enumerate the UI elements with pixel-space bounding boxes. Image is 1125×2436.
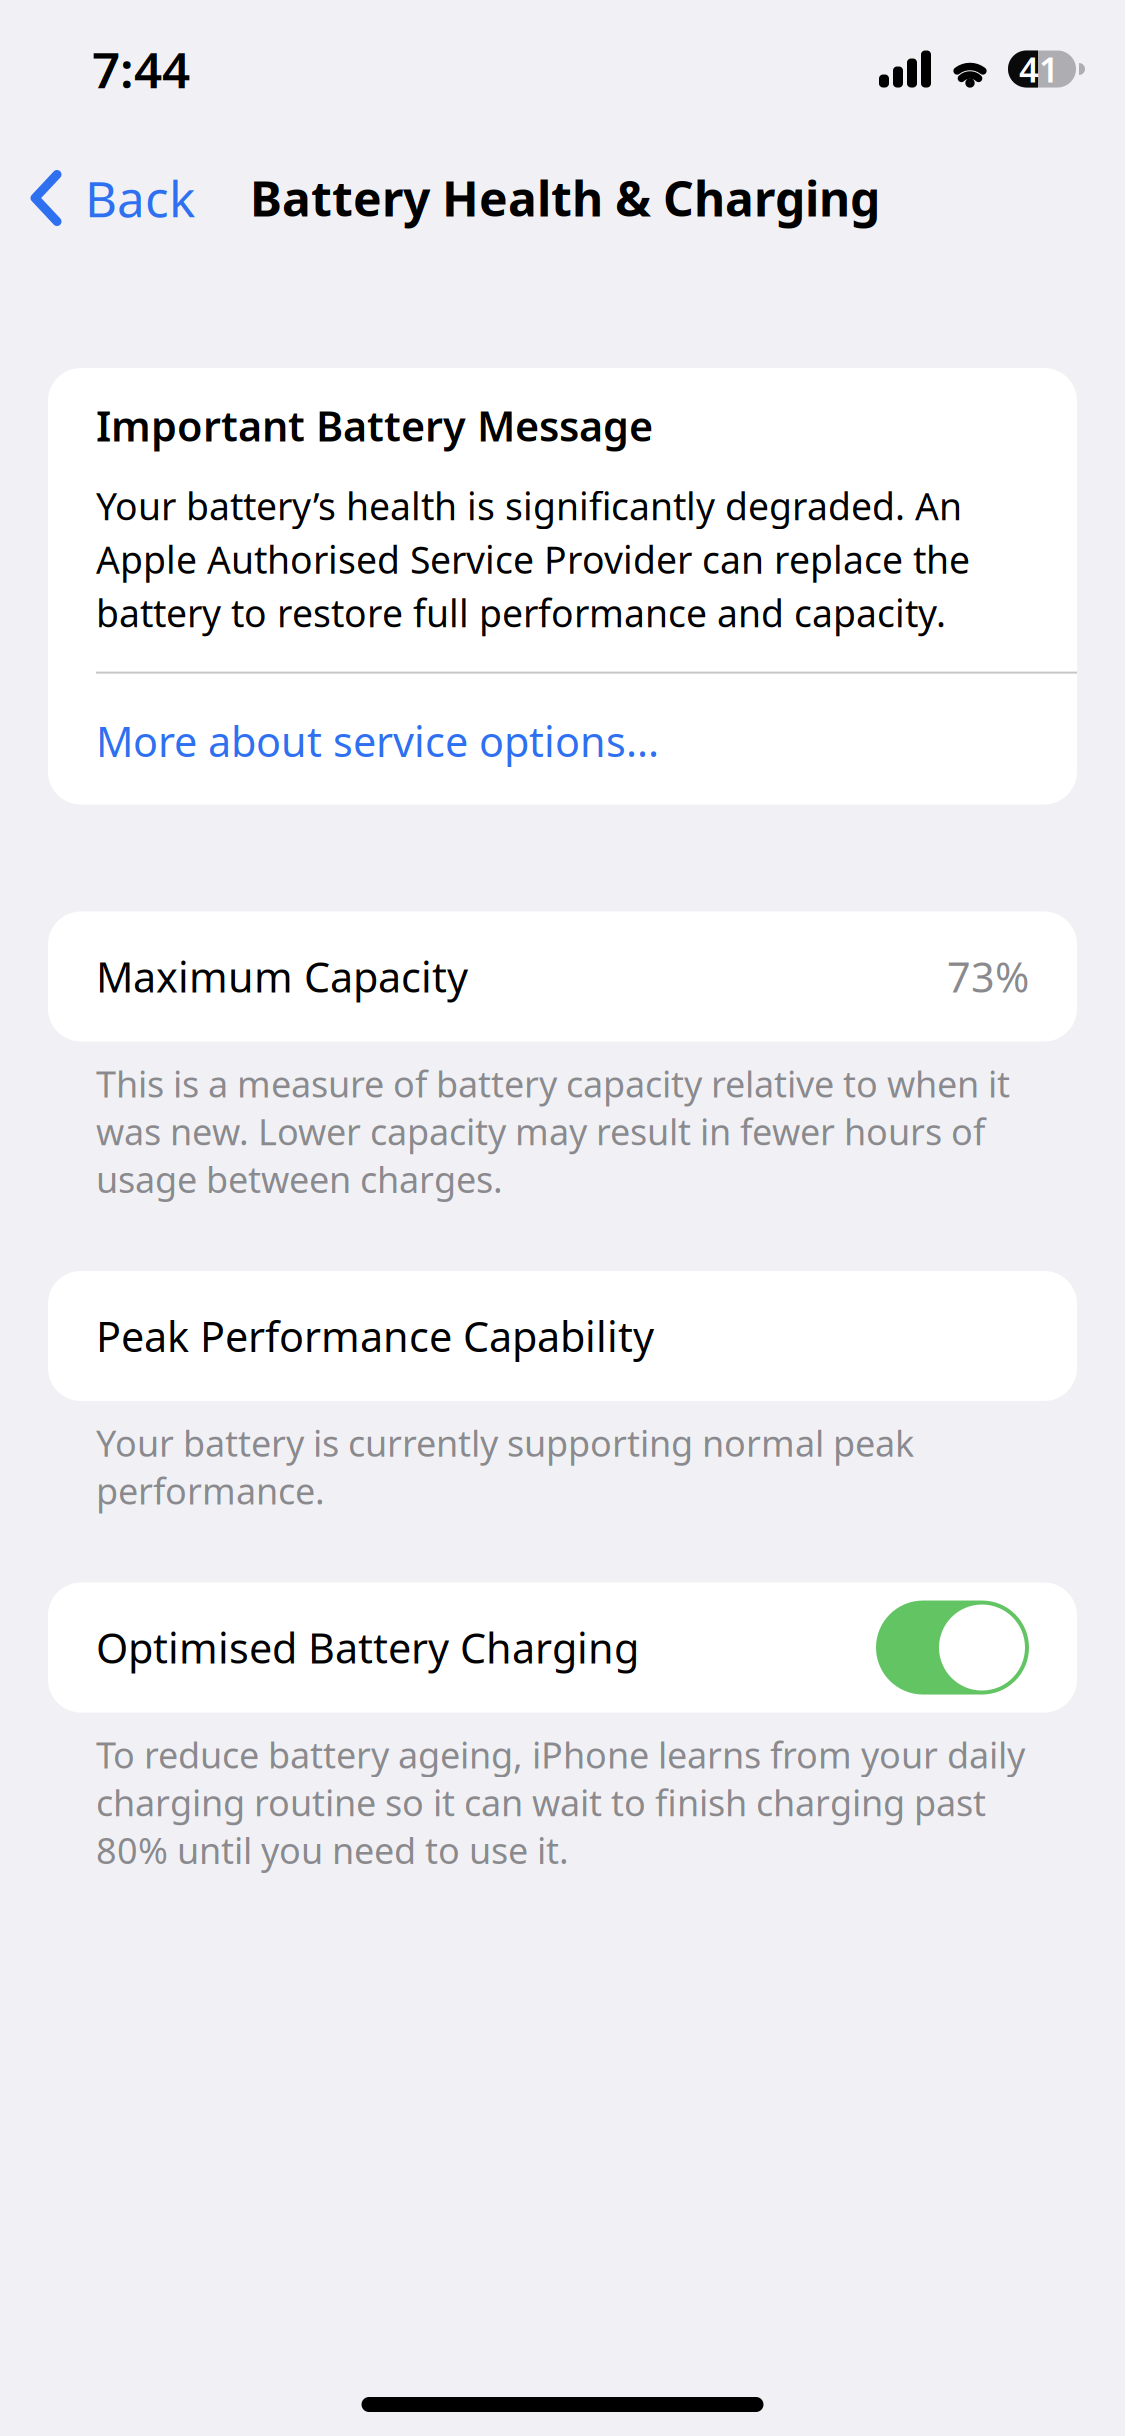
staticText: This is a measure of battery capacity re…: [96, 1059, 1010, 1203]
staticText: Battery Health & Charging: [250, 166, 880, 230]
staticText: Peak Performance Capability: [96, 1308, 654, 1363]
staticText: More about service options...: [96, 714, 659, 768]
button[interactable]: Peak Performance Capability: [0, 1271, 1125, 1401]
staticText: To reduce battery ageing, iPhone learns …: [96, 1730, 1025, 1874]
button[interactable]: Maximum Capacity: [0, 911, 1125, 1041]
button[interactable]: Back: [26, 147, 199, 249]
staticText: Back: [85, 165, 195, 231]
button[interactable]: Optimised Battery Charging: [0, 1582, 1125, 1712]
staticText: 73%: [947, 949, 1029, 1004]
staticText: Important Battery Message: [96, 398, 653, 453]
staticText: Your battery is currently supporting nor…: [96, 1419, 914, 1514]
staticText: Optimised Battery Charging: [96, 1620, 639, 1675]
button[interactable]: More about service options...: [96, 674, 1077, 804]
staticText: Your battery’s health is significantly d…: [96, 481, 970, 638]
staticText: 41: [1019, 46, 1059, 92]
staticText: 7:44: [92, 36, 190, 102]
staticText: Maximum Capacity: [96, 949, 468, 1004]
